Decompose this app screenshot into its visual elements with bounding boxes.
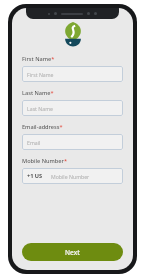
button[interactable]: +1 US (22, 168, 48, 184)
staticText: Email (27, 139, 41, 146)
button[interactable]: Mobile Number (48, 168, 123, 184)
staticText: +1 US (27, 172, 43, 180)
staticText: Mobile Number (51, 173, 90, 180)
button[interactable]: Last Name (22, 100, 123, 116)
button[interactable]: Email (22, 134, 123, 150)
staticText: First Name (27, 71, 54, 78)
staticText: Last Name* (22, 89, 54, 97)
staticText: Email-address* (22, 123, 63, 131)
staticText: Mobile Number* (22, 157, 67, 165)
staticText: Next (65, 248, 80, 257)
button[interactable]: Next (22, 243, 123, 261)
staticText: First Name* (22, 55, 55, 63)
button[interactable]: First Name (22, 66, 123, 82)
staticText: Last Name (27, 105, 53, 112)
